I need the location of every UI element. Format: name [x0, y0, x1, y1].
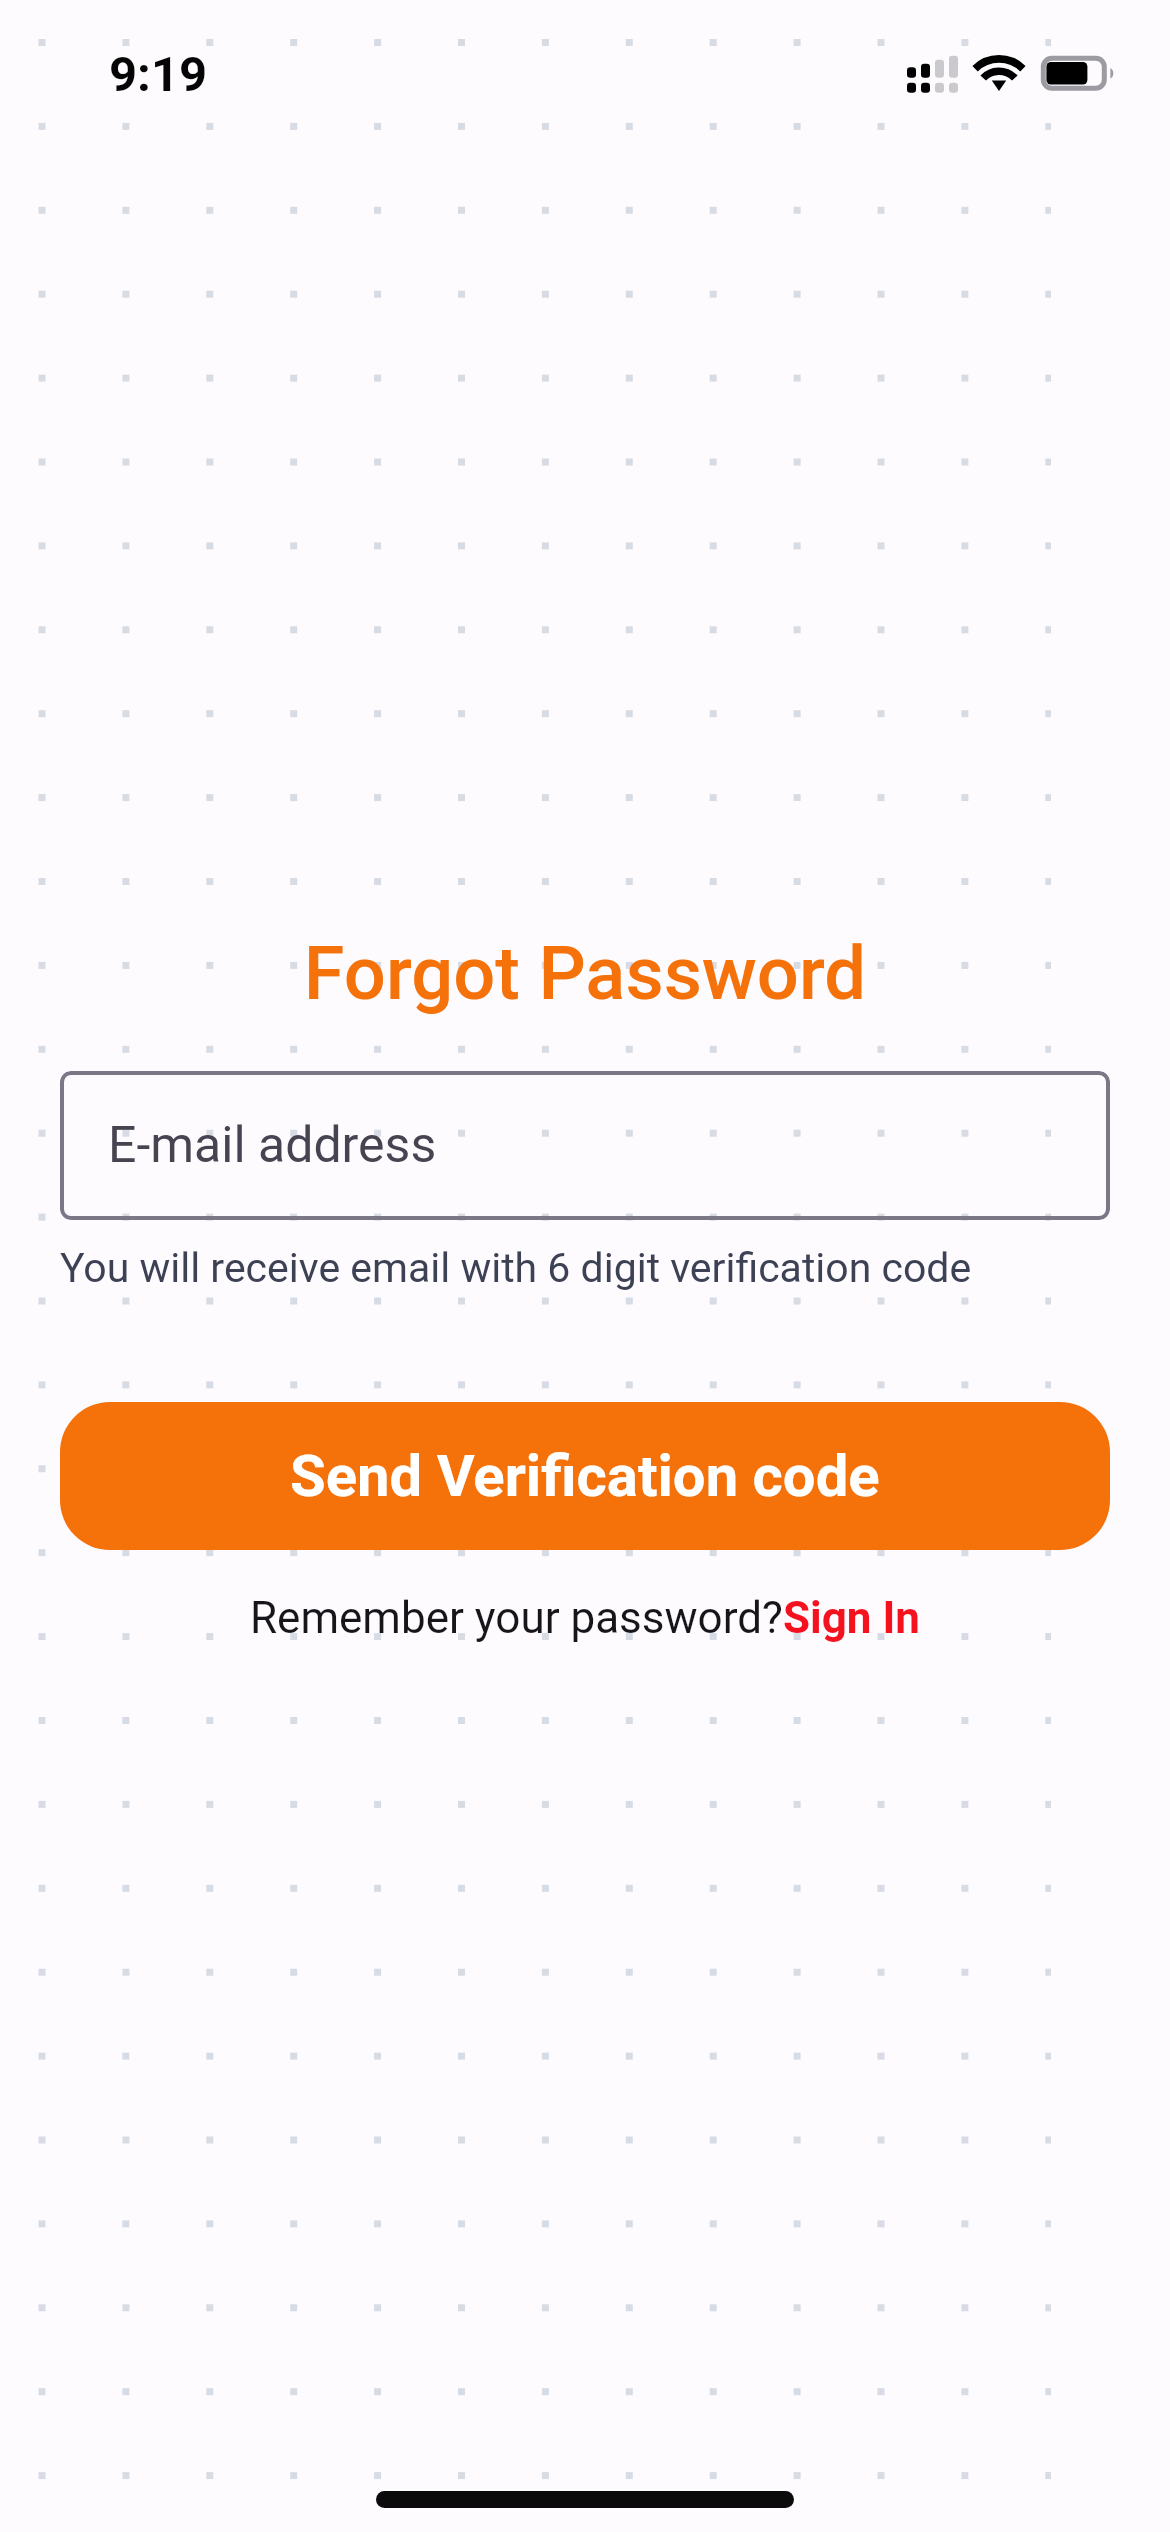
staticText: You will receive email with 6 digit veri… [60, 1244, 972, 1292]
button[interactable]: Sign In [783, 1592, 920, 1644]
button[interactable]: Send Verification code [60, 1402, 1110, 1550]
staticText: E-mail address [108, 1116, 437, 1175]
staticText: Sign In [783, 1592, 920, 1644]
other: Cellular signal, Wi-Fi and battery statu… [905, 40, 1120, 106]
staticText: Send Verification code [290, 1442, 880, 1510]
staticText: Remember your password? [250, 1592, 783, 1644]
staticText: 9:19 [109, 46, 208, 103]
staticText: Forgot Password [60, 930, 1110, 1017]
button[interactable]: E-mail address [60, 1071, 1110, 1220]
